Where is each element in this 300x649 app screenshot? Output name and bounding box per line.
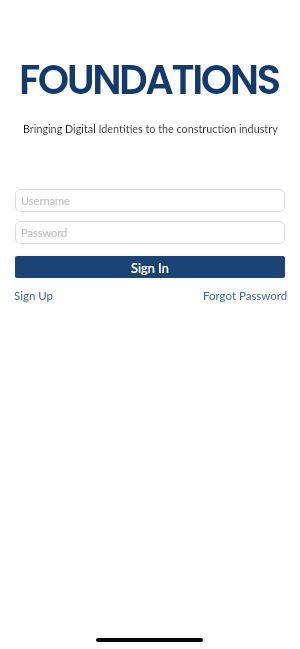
button[interactable]: Username (15, 189, 285, 212)
staticText: Username (21, 194, 70, 207)
button[interactable]: Forgot Password (203, 289, 288, 303)
button[interactable]: Password (15, 221, 285, 244)
staticText: FOUNDATIONS (19, 52, 279, 108)
staticText: Bringing Digital Identities to the const… (23, 122, 278, 135)
button[interactable]: Sign Up (14, 289, 54, 303)
staticText: Sign In (131, 260, 169, 275)
button[interactable]: Sign In (15, 256, 285, 278)
staticText: Password (21, 226, 68, 239)
